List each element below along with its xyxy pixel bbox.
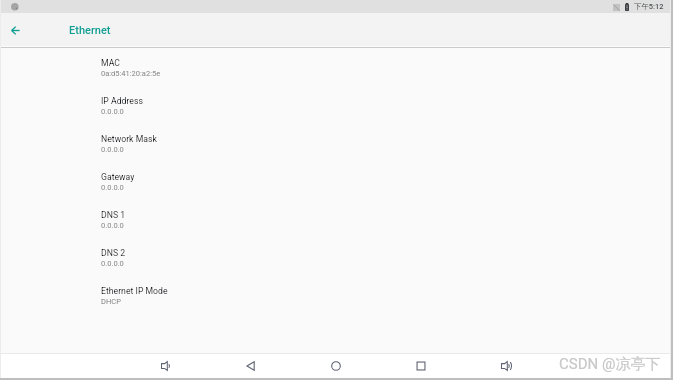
button[interactable]: Ethernet IP Mode xyxy=(0,286,673,324)
staticText: Gateway xyxy=(101,172,135,182)
staticText: Ethernet xyxy=(69,24,111,37)
staticText: DNS 1 xyxy=(101,210,126,220)
button[interactable]: Back xyxy=(3,18,27,42)
button[interactable]: Home xyxy=(315,354,357,380)
button[interactable]: Volume up xyxy=(485,354,527,380)
staticText: MAC xyxy=(101,58,120,68)
button[interactable]: Gateway xyxy=(0,172,673,210)
staticText: 0.0.0.0 xyxy=(101,145,124,154)
staticText: 0.0.0.0 xyxy=(101,107,124,116)
staticText: 0.0.0.0 xyxy=(101,259,124,268)
staticText: CSDN @凉亭下 xyxy=(559,355,661,374)
staticText: 下午5:12 xyxy=(634,2,664,11)
staticText: 0a:d5:41:20:a2:5e xyxy=(101,69,161,78)
staticText: DNS 2 xyxy=(101,248,126,258)
button[interactable]: DNS 2 xyxy=(0,248,673,286)
button[interactable]: Volume down xyxy=(145,354,187,380)
staticText: DHCP xyxy=(101,297,121,306)
button[interactable]: MAC xyxy=(0,58,673,96)
staticText: 0.0.0.0 xyxy=(101,221,124,230)
button[interactable]: DNS 1 xyxy=(0,210,673,248)
button[interactable]: Back xyxy=(230,354,272,380)
staticText: 0.0.0.0 xyxy=(101,183,124,192)
button[interactable]: Recents xyxy=(400,354,442,380)
staticText: IP Address xyxy=(101,96,143,106)
staticText: Ethernet IP Mode xyxy=(101,286,168,296)
button[interactable]: IP Address xyxy=(0,96,673,134)
staticText: Network Mask xyxy=(101,134,157,144)
button[interactable]: Network Mask xyxy=(0,134,673,172)
